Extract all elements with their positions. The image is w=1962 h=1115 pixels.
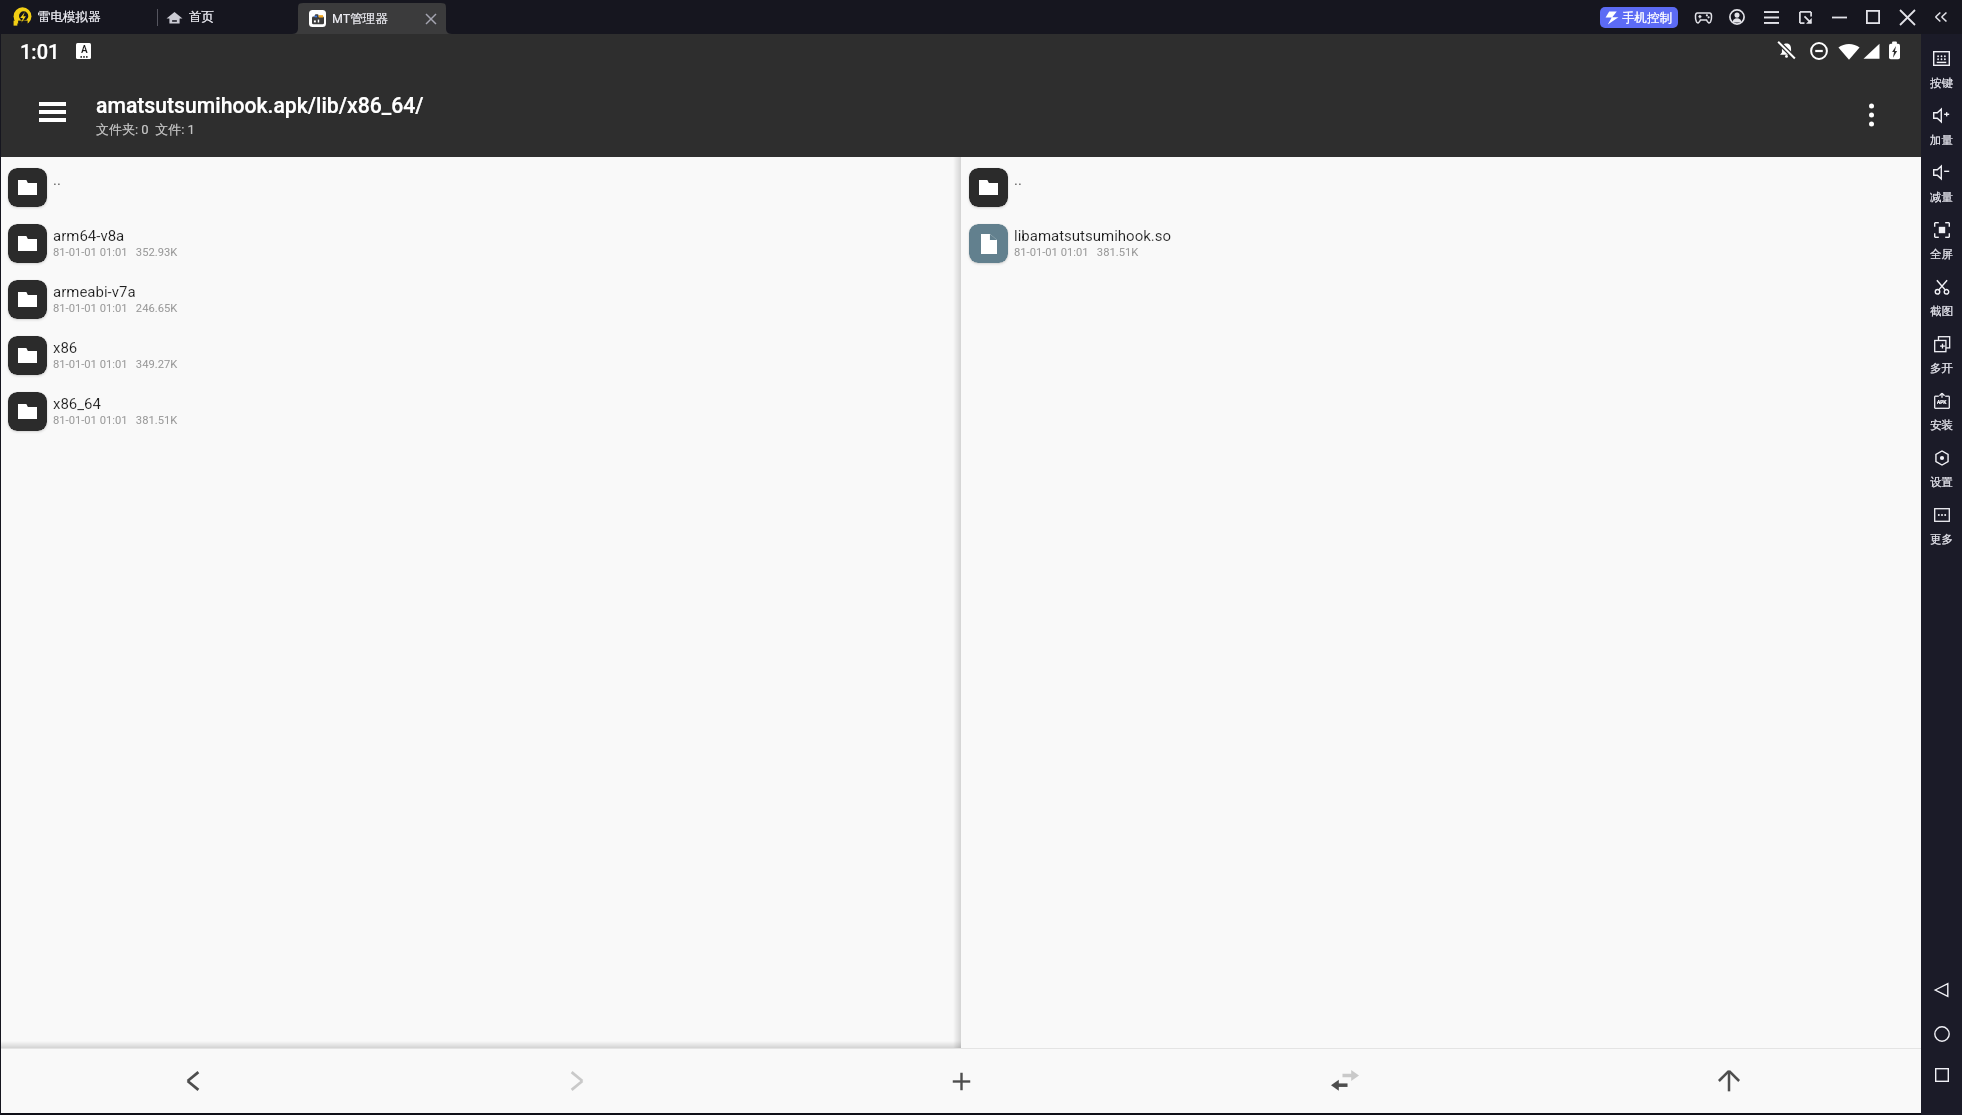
staticText: x86 [53,339,78,357]
button[interactable]: 减量 [1921,155,1962,212]
staticText: 按键 [1930,76,1953,90]
button[interactable]: Home [1921,1013,1962,1054]
staticText: 雷电模拟器 [38,9,101,25]
button[interactable]: x86 [0,327,961,383]
button[interactable]: Menu [1754,0,1788,34]
staticText: 1:01 [20,40,60,63]
staticText: 减量 [1930,190,1953,204]
button[interactable]: Back [1921,969,1962,1010]
button[interactable]: libamatsutsumihook.so [961,215,1921,271]
staticText: 81-01-01 01:01 381.51K [53,414,178,427]
button[interactable]: 多开 [1921,326,1962,383]
button[interactable]: MT管理器 [298,3,445,34]
staticText: 多开 [1930,361,1953,375]
staticText: arm64-v8a [53,227,125,245]
button[interactable]: 全屏 [1921,212,1962,269]
button[interactable]: APK [1921,383,1962,440]
staticText: .. [53,171,61,189]
button[interactable]: armeabi-v7a [0,271,961,327]
button[interactable]: Navigation menu [30,90,74,134]
button[interactable]: Close [1890,0,1924,34]
staticText: 文件夹: 0 文件: 1 [96,121,195,137]
button[interactable]: 设置 [1921,440,1962,497]
button[interactable]: .. [0,159,961,215]
button[interactable]: Collapse sidebar [1924,0,1958,34]
button[interactable]: arm64-v8a [0,215,961,271]
staticText: APK [1937,400,1947,406]
staticText: 全屏 [1930,247,1953,261]
button[interactable]: More options [1849,93,1893,137]
button[interactable]: Resize window [1788,0,1822,34]
button[interactable]: .. [961,159,1921,215]
staticText: 81-01-01 01:01 246.65K [53,302,178,315]
button[interactable]: New [769,1049,1153,1113]
staticText: 首页 [189,9,214,25]
staticText: MT管理器 [332,11,388,27]
staticText: 81-01-01 01:01 381.51K [1014,246,1139,259]
staticText: A [81,44,88,56]
button[interactable]: 手机控制 [1600,7,1678,28]
button[interactable]: Game controller [1686,0,1720,34]
staticText: amatsutsumihook.apk/lib/x86_64/ [96,93,424,118]
button[interactable]: 截图 [1921,269,1962,326]
button[interactable]: 更多 [1921,497,1962,554]
button[interactable]: Minimize [1822,0,1856,34]
staticText: x86_64 [53,395,101,413]
staticText: 加量 [1930,133,1953,147]
staticText: libamatsutsumihook.so [1014,227,1172,245]
button[interactable]: Account [1720,0,1754,34]
staticText: 安装 [1930,418,1953,432]
staticText: 81-01-01 01:01 349.27K [53,358,178,371]
staticText: .. [1014,171,1022,189]
button[interactable]: x86_64 [0,383,961,439]
button[interactable]: Up one level [1537,1049,1921,1113]
staticText: armeabi-v7a [53,283,136,301]
staticText: 81-01-01 01:01 352.93K [53,246,178,259]
staticText: 截图 [1930,304,1953,318]
button[interactable]: Switch panel [1153,1049,1537,1113]
staticText: 手机控制 [1622,10,1672,26]
button[interactable]: Recents [1921,1054,1962,1095]
button[interactable]: Maximize [1856,0,1890,34]
button[interactable]: 加量 [1921,98,1962,155]
button[interactable]: Close tab [422,10,440,28]
staticText: 更多 [1930,532,1953,546]
button[interactable]: 首页 [160,0,220,34]
button[interactable]: 按键 [1921,41,1962,98]
staticText: 设置 [1930,475,1953,489]
button[interactable]: Back [0,1049,385,1113]
